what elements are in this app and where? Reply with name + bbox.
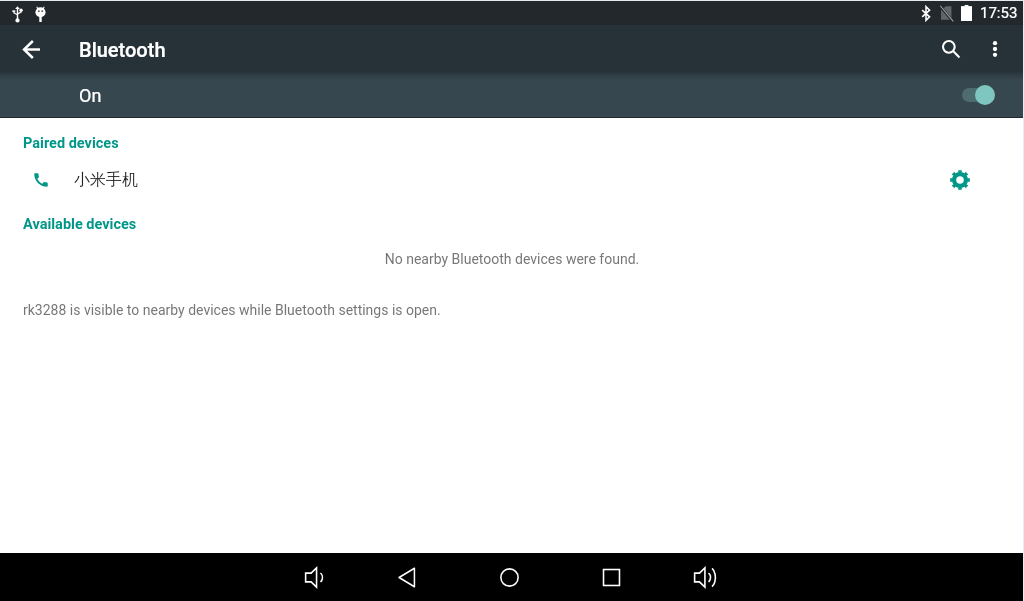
button[interactable]: On [0, 72, 1024, 118]
staticText: Paired devices [23, 135, 119, 152]
button[interactable]: Home [487, 553, 531, 601]
button[interactable]: More options [974, 28, 1016, 70]
staticText: No nearby Bluetooth devices were found. [0, 251, 1024, 267]
button[interactable]: 小米手机 [0, 156, 1024, 204]
button[interactable]: Back [385, 553, 429, 601]
staticText: Available devices [23, 216, 137, 233]
staticText: rk3288 is visible to nearby devices whil… [23, 302, 441, 318]
staticText: On [79, 85, 102, 106]
staticText: 小米手机 [74, 170, 138, 190]
button[interactable]: Navigate up [10, 28, 52, 70]
button[interactable]: Search [932, 28, 974, 70]
button[interactable]: Volume up [682, 553, 726, 601]
button[interactable]: Device settings [938, 158, 982, 202]
button[interactable]: Recents [589, 553, 633, 601]
staticText: 17:53 [980, 4, 1018, 22]
button[interactable]: Volume down [293, 553, 337, 601]
staticText: Bluetooth [79, 38, 166, 61]
